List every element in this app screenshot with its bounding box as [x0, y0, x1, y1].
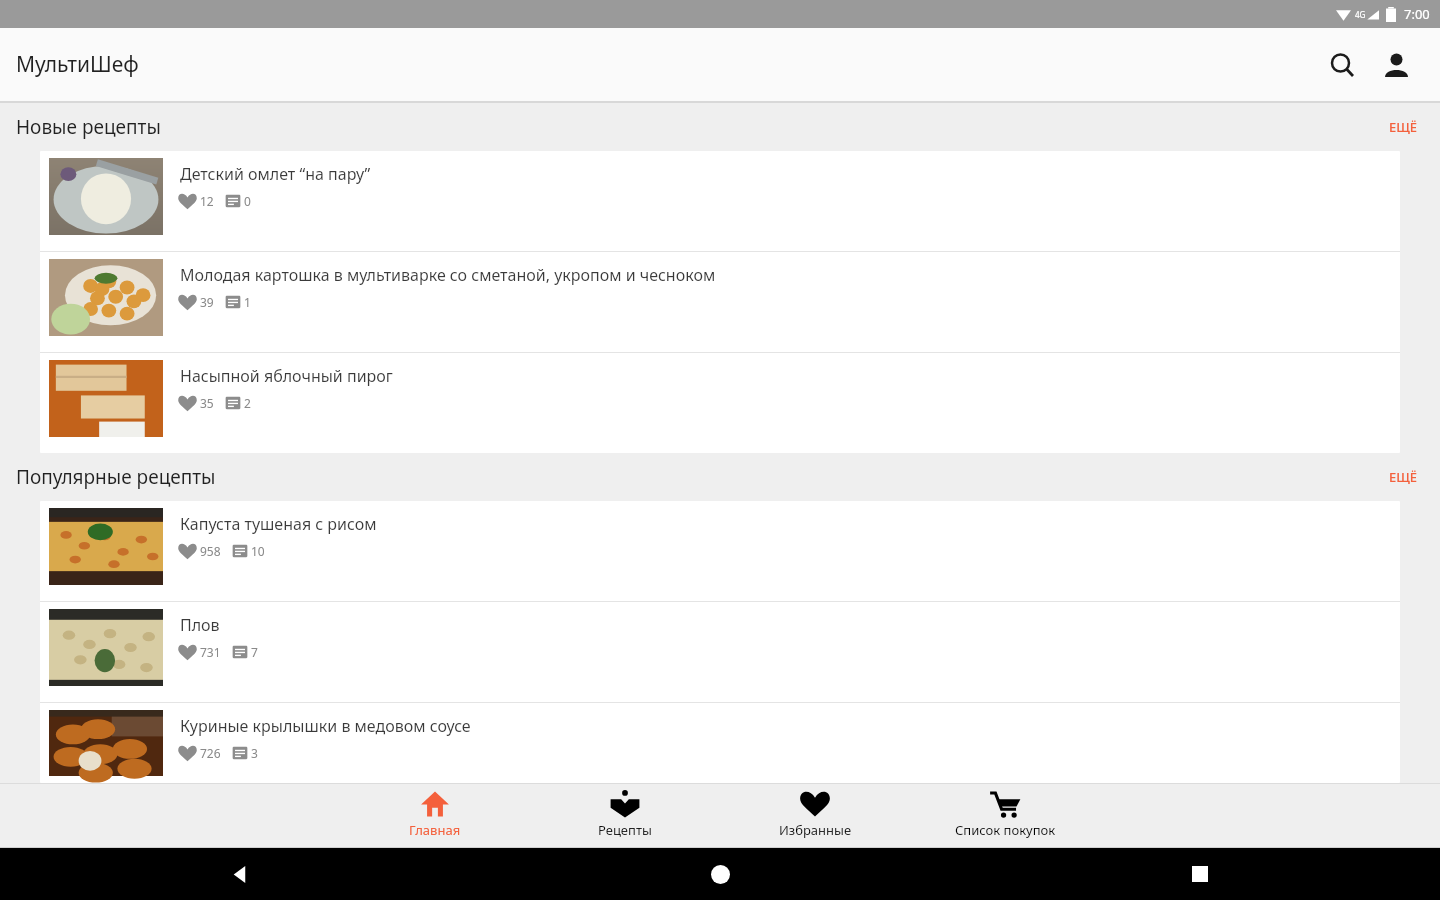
staticText: ЕЩЁ	[1389, 468, 1418, 486]
staticText: 726	[200, 745, 221, 761]
button[interactable]: Account	[1372, 41, 1420, 89]
staticText: Рецепты	[598, 821, 652, 839]
button[interactable]: Recents	[960, 848, 1440, 900]
staticText: 39	[200, 294, 214, 310]
staticText: 12	[200, 193, 214, 209]
button[interactable]: Плов	[40, 602, 1400, 702]
staticText: 7	[251, 644, 258, 660]
staticText: Куриные крылышки в медовом соусе	[180, 715, 471, 737]
staticText: 0	[244, 193, 251, 209]
staticText: 10	[251, 543, 265, 559]
staticText: Новые рецепты	[16, 114, 161, 140]
staticText: 4G	[1355, 9, 1366, 20]
button[interactable]: ЕЩЁ	[1375, 462, 1432, 492]
button[interactable]: Молодая картошка в мультиварке со сметан…	[40, 252, 1400, 352]
button[interactable]: Home	[480, 848, 960, 900]
staticText: Главная	[409, 821, 461, 839]
staticText: 1	[244, 294, 251, 310]
button[interactable]: Детский омлет “на пару”	[40, 151, 1400, 251]
button[interactable]: Список покупок	[910, 784, 1100, 847]
button[interactable]: Избранные	[720, 784, 910, 847]
staticText: Детский омлет “на пару”	[180, 163, 371, 185]
staticText: Молодая картошка в мультиварке со сметан…	[180, 264, 716, 286]
staticText: Насыпной яблочный пирог	[180, 365, 393, 387]
staticText: 731	[200, 644, 221, 660]
button[interactable]: Капуста тушеная с рисом	[40, 501, 1400, 601]
staticText: 35	[200, 395, 214, 411]
staticText: ЕЩЁ	[1389, 118, 1418, 136]
staticText: МультиШеф	[16, 50, 139, 79]
button[interactable]: Back	[0, 848, 480, 900]
staticText: Капуста тушеная с рисом	[180, 513, 377, 535]
button[interactable]: Рецепты	[530, 784, 720, 847]
staticText: Популярные рецепты	[16, 464, 216, 490]
button[interactable]: Куриные крылышки в медовом соусе	[40, 703, 1400, 783]
button[interactable]: Главная	[340, 784, 530, 847]
staticText: Избранные	[779, 821, 852, 839]
button[interactable]: Насыпной яблочный пирог	[40, 353, 1400, 453]
staticText: 3	[251, 745, 258, 761]
staticText: 2	[244, 395, 251, 411]
staticText: Плов	[180, 614, 220, 636]
button[interactable]: ЕЩЁ	[1375, 112, 1432, 142]
staticText: 7:00	[1404, 5, 1430, 23]
button[interactable]: Search	[1318, 41, 1366, 89]
staticText: Список покупок	[955, 821, 1056, 839]
staticText: 958	[200, 543, 221, 559]
